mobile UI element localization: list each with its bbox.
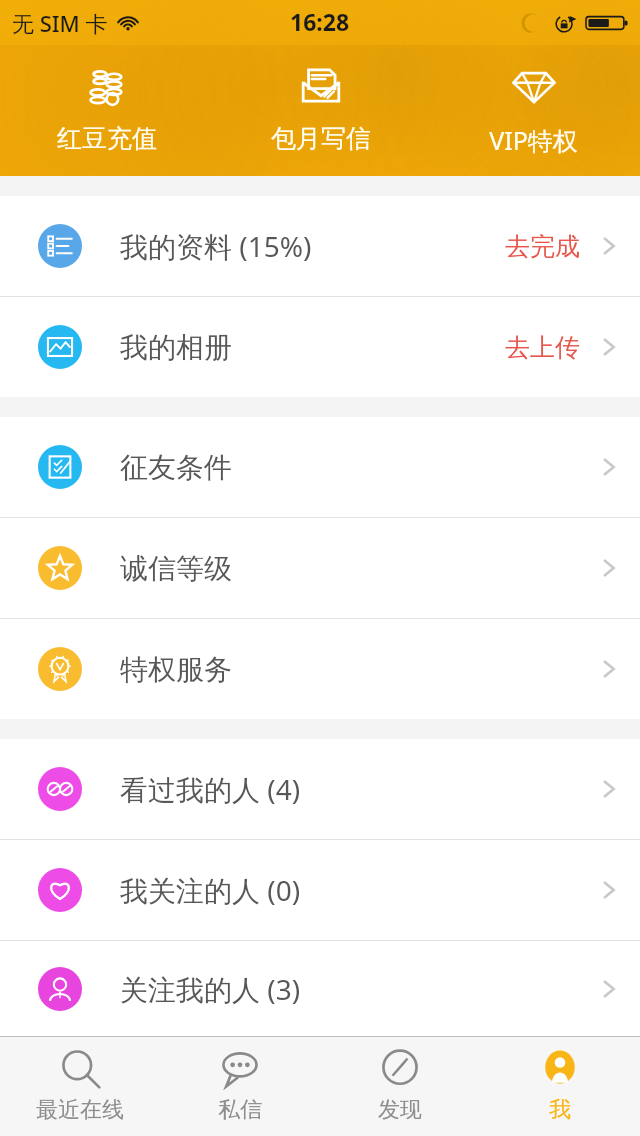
button[interactable]: 我关注的人 (0) <box>0 840 640 940</box>
button[interactable]: 我的资料 (15%) <box>0 196 640 296</box>
staticText: 红豆充值 <box>57 123 157 154</box>
staticText: 去上传 <box>505 332 580 363</box>
button[interactable]: 关注我的人 (3) <box>0 941 640 1036</box>
button[interactable]: 最近在线 <box>0 1037 160 1136</box>
staticText: 去完成 <box>505 231 580 262</box>
button[interactable]: 我 <box>480 1037 640 1136</box>
staticText: 发现 <box>378 1096 422 1124</box>
button[interactable]: 红豆充值 <box>0 45 214 176</box>
button[interactable]: 包月写信 <box>214 45 427 176</box>
staticText: 我的资料 (15%) <box>120 227 312 265</box>
staticText: 最近在线 <box>36 1096 124 1124</box>
staticText: 看过我的人 (4) <box>120 770 301 808</box>
staticText: 特权服务 <box>120 652 232 687</box>
button[interactable]: 征友条件 <box>0 417 640 517</box>
button[interactable]: 看过我的人 (4) <box>0 739 640 839</box>
staticText: 无 SIM 卡 <box>12 8 108 38</box>
staticText: 私信 <box>218 1096 262 1124</box>
staticText: VIP特权 <box>489 123 578 157</box>
staticText: 征友条件 <box>120 450 232 485</box>
button[interactable]: VIP特权 <box>427 45 640 176</box>
staticText: 16:28 <box>290 6 350 37</box>
button[interactable]: 我的相册 <box>0 297 640 397</box>
staticText: 关注我的人 (3) <box>120 970 301 1008</box>
button[interactable]: 诚信等级 <box>0 518 640 618</box>
staticText: 我的相册 <box>120 330 232 365</box>
staticText: 我关注的人 (0) <box>120 871 301 909</box>
button[interactable]: 发现 <box>320 1037 480 1136</box>
button[interactable]: 私信 <box>160 1037 320 1136</box>
staticText: 我 <box>549 1096 571 1124</box>
staticText: 诚信等级 <box>120 551 232 586</box>
staticText: 包月写信 <box>271 123 371 154</box>
button[interactable]: 特权服务 <box>0 619 640 719</box>
